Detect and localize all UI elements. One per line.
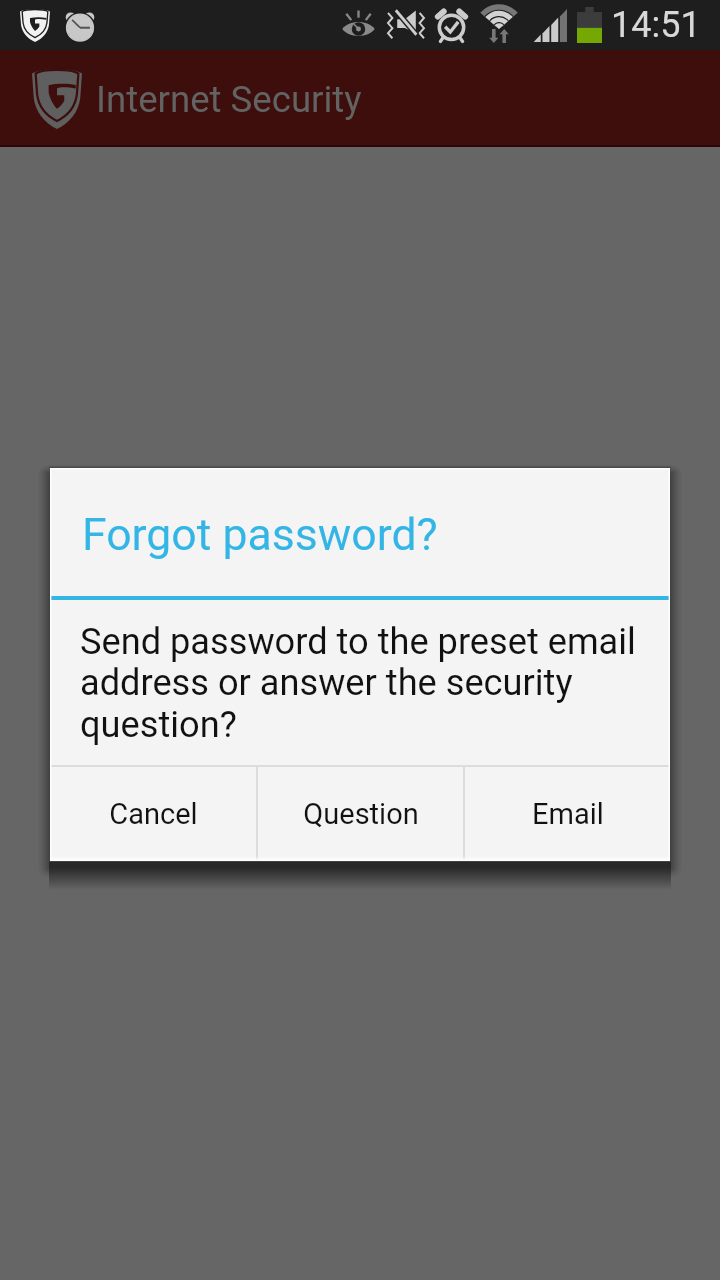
staticText: Cancel bbox=[109, 797, 198, 831]
staticText: Forgot password? bbox=[82, 509, 438, 561]
button[interactable]: Email bbox=[465, 767, 670, 861]
button[interactable]: Cancel bbox=[50, 767, 256, 861]
button[interactable]: Question bbox=[258, 767, 463, 861]
staticText: Question bbox=[303, 797, 419, 831]
staticText: Email bbox=[532, 797, 604, 831]
staticText: Send password to the preset email addres… bbox=[80, 620, 652, 746]
staticText: 14:51 bbox=[611, 4, 701, 46]
staticText: Internet Security bbox=[96, 78, 362, 121]
